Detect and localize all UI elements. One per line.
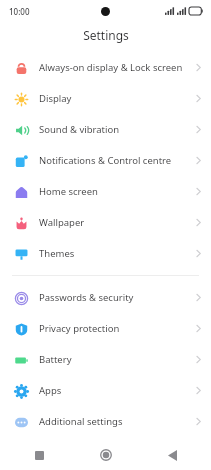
staticText: Passwords & security [39, 291, 190, 304]
staticText: 10:00 [9, 6, 30, 17]
button[interactable]: Sound & vibration [0, 114, 211, 145]
button[interactable]: Apps [0, 375, 211, 406]
button[interactable]: Display [0, 83, 211, 114]
staticText: Home screen [39, 185, 190, 198]
staticText: Privacy protection [39, 322, 190, 335]
staticText: Battery [39, 353, 190, 366]
staticText: Notifications & Control centre [39, 154, 190, 167]
button[interactable]: Passwords & security [0, 282, 211, 313]
button[interactable]: Back [155, 440, 189, 470]
staticText: Apps [39, 384, 190, 397]
button[interactable]: Home screen [0, 176, 211, 207]
button[interactable]: Privacy protection [0, 313, 211, 344]
button[interactable]: Recent apps [22, 440, 56, 470]
staticText: Settings [83, 27, 129, 43]
button[interactable]: Notifications & Control centre [0, 145, 211, 176]
button[interactable]: Battery [0, 344, 211, 375]
staticText: Additional settings [39, 415, 190, 428]
button[interactable]: Always-on display & Lock screen [0, 52, 211, 83]
button[interactable]: Home [89, 440, 123, 470]
staticText: Sound & vibration [39, 123, 190, 136]
staticText: Wallpaper [39, 216, 190, 229]
button[interactable]: Wallpaper [0, 207, 211, 238]
staticText: Always-on display & Lock screen [39, 61, 190, 74]
button[interactable]: Additional settings [0, 406, 211, 437]
staticText: Themes [39, 247, 190, 260]
button[interactable]: Themes [0, 238, 211, 269]
staticText: Display [39, 92, 190, 105]
